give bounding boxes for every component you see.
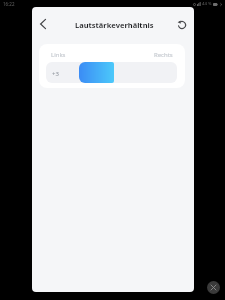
button[interactable]: Close bbox=[207, 281, 220, 294]
staticText: +3 bbox=[52, 70, 59, 78]
button[interactable]: Reset bbox=[173, 16, 191, 34]
staticText: Links bbox=[51, 51, 66, 59]
staticText: Lautstärkeverhältnis bbox=[75, 20, 154, 30]
staticText: 16:22 bbox=[3, 1, 15, 7]
staticText: Rechts bbox=[154, 51, 173, 59]
staticText: 44 % bbox=[202, 1, 212, 7]
button[interactable]: Back bbox=[34, 15, 52, 33]
button[interactable]: +3 bbox=[46, 62, 177, 83]
